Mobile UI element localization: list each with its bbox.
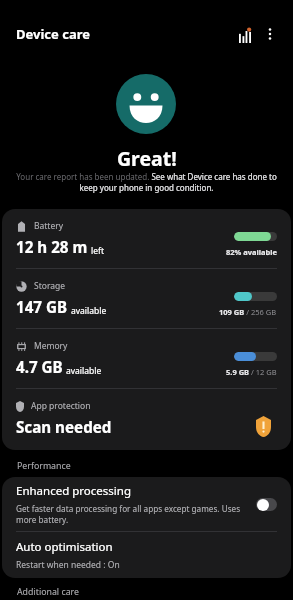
staticText: 4.7 GB (16, 357, 63, 378)
staticText: Enhanced processing (16, 483, 131, 499)
staticText: 109 GB / 256 GB (219, 307, 277, 317)
staticText: left (91, 245, 104, 257)
button[interactable]: Auto optimisation (2, 532, 291, 578)
staticText: Restart when needed : On (16, 559, 120, 571)
staticText: 147 GB (16, 297, 68, 318)
staticText: Additional care (17, 586, 79, 598)
staticText: Great! (117, 145, 177, 172)
button[interactable]: Memory (2, 329, 291, 388)
button[interactable]: Enhanced processing toggle (256, 498, 277, 511)
staticText: available (71, 305, 107, 317)
button[interactable]: App protection (2, 389, 291, 448)
staticText: Device care (16, 25, 90, 43)
button[interactable]: Care report (230, 22, 260, 52)
staticText: 5.9 GB / 12 GB (226, 367, 277, 377)
staticText: Battery (34, 220, 64, 232)
button[interactable]: Enhanced processing (2, 477, 291, 531)
staticText: Memory (34, 340, 68, 352)
staticText: 82% available (226, 247, 277, 257)
button[interactable]: Battery (2, 209, 291, 268)
staticText: Performance (17, 460, 71, 472)
staticText: Your care report has been updated. See w… (12, 171, 281, 193)
button[interactable]: More options (255, 19, 285, 49)
staticText: Auto optimisation (16, 539, 113, 555)
button[interactable]: Storage (2, 269, 291, 328)
staticText: Get faster data processing for all apps … (16, 503, 256, 526)
staticText: 12 h 28 m (16, 237, 88, 258)
staticText: Storage (34, 280, 66, 292)
staticText: available (66, 365, 102, 377)
staticText: App protection (31, 400, 91, 412)
staticText: Scan needed (16, 417, 112, 438)
